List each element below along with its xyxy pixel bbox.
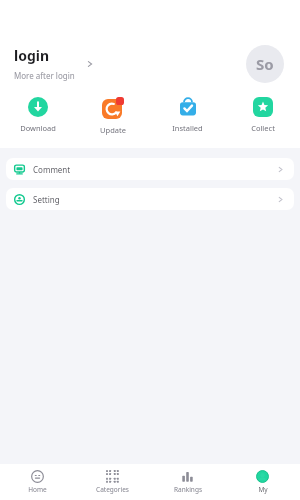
staticText: Update [100,125,126,135]
button[interactable]: Setting [6,188,294,210]
button[interactable]: Rankings [150,464,225,500]
button[interactable]: login [14,44,95,83]
button[interactable]: Download [0,95,75,135]
staticText: Download [20,123,56,133]
button[interactable]: Update [75,95,150,137]
button[interactable]: Installed [150,95,225,135]
staticText: My [258,485,268,494]
button[interactable]: Collect [225,95,300,135]
staticText: Categories [96,485,129,494]
staticText: Home [28,485,47,494]
button[interactable]: Profile avatar [246,45,284,83]
staticText: login [14,46,50,65]
staticText: More after login [14,70,75,81]
staticText: Rankings [174,485,202,494]
button[interactable]: Comment [6,158,294,180]
staticText: Collect [251,123,275,133]
staticText: Comment [33,164,71,175]
button[interactable]: Categories [75,464,150,500]
staticText: Setting [33,194,60,205]
staticText: Installed [172,123,203,133]
button[interactable]: Home [0,464,75,500]
staticText: So [256,54,274,74]
button[interactable]: My [225,464,300,500]
